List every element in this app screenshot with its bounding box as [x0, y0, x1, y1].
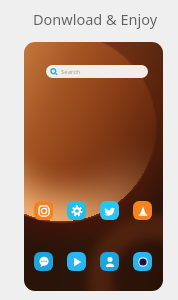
- button[interactable]: Messages: [34, 252, 53, 271]
- button[interactable]: Contacts: [100, 252, 119, 271]
- button[interactable]: Search: [46, 65, 148, 78]
- button[interactable]: Instagram: [34, 201, 53, 220]
- staticText: Donwload & Enjoy: [12, 9, 178, 29]
- staticText: Search: [61, 68, 80, 76]
- button[interactable]: Twitter: [100, 201, 119, 220]
- button[interactable]: VLC: [133, 201, 152, 220]
- button[interactable]: Settings: [67, 201, 86, 220]
- button[interactable]: Play: [67, 252, 86, 271]
- button[interactable]: Camera: [133, 252, 152, 271]
